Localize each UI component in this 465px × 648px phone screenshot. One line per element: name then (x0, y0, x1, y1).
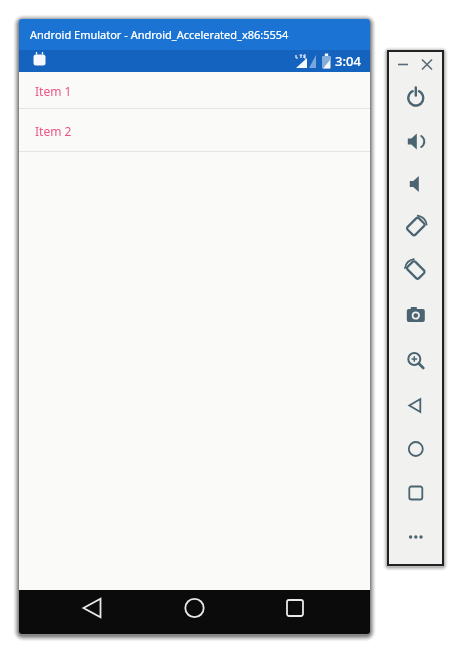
button[interactable] (387, 76, 444, 118)
button[interactable] (387, 426, 444, 470)
button[interactable] (387, 162, 444, 205)
button[interactable] (387, 50, 415, 76)
staticText: Item 2 (35, 123, 72, 139)
staticText: 3:04 (335, 52, 361, 70)
button[interactable] (415, 50, 444, 76)
button[interactable] (253, 590, 370, 634)
staticText: Android Emulator - Android_Accelerated_x… (30, 27, 289, 42)
button[interactable] (387, 470, 444, 514)
button[interactable] (19, 590, 136, 634)
button[interactable] (387, 381, 444, 426)
staticText: Item 1 (35, 83, 72, 99)
button[interactable] (387, 205, 444, 247)
button[interactable]: Item 1 (19, 72, 370, 108)
button[interactable] (387, 514, 444, 558)
button[interactable]: Item 2 (19, 109, 370, 151)
button[interactable] (387, 291, 444, 336)
button[interactable] (387, 118, 444, 162)
button[interactable] (387, 336, 444, 381)
button[interactable] (387, 247, 444, 291)
button[interactable] (136, 590, 253, 634)
